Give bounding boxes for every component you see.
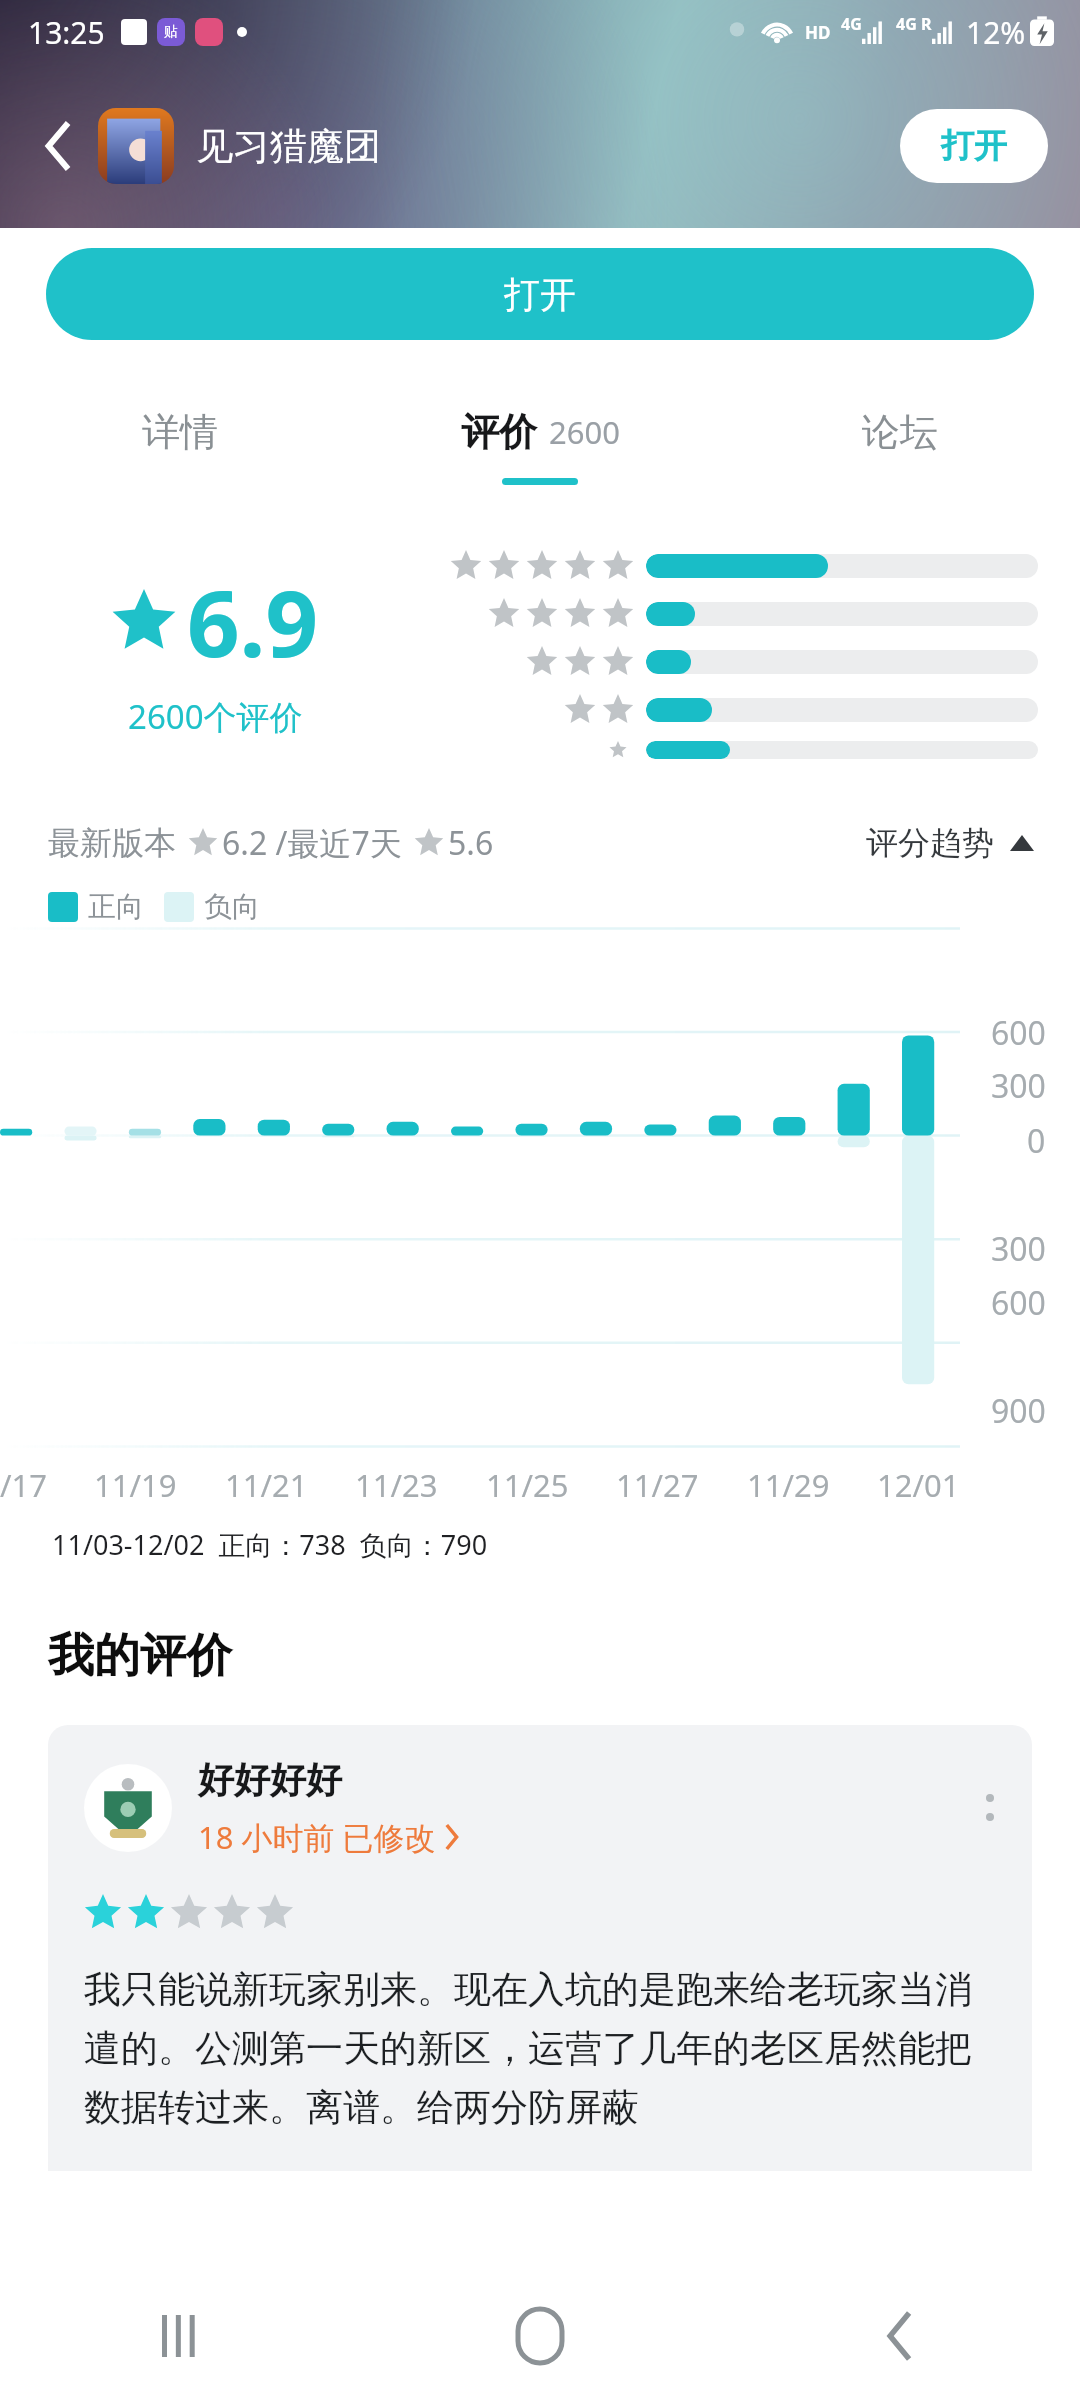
staticText: 2600个评价: [128, 694, 303, 739]
button[interactable]: 打开: [46, 248, 1034, 340]
staticText: 打开: [504, 272, 576, 317]
staticText: 最新版本: [48, 823, 176, 863]
staticText: 600: [991, 1281, 1046, 1325]
button[interactable]: 打开: [900, 109, 1048, 183]
button[interactable]: More options: [986, 1794, 994, 1821]
button[interactable]: 评价: [360, 408, 720, 485]
button[interactable]: Back: [720, 2272, 1080, 2400]
staticText: 11/23: [355, 1464, 438, 1506]
staticText: 2600: [549, 411, 620, 453]
button[interactable]: 评分趋势: [866, 823, 1034, 863]
staticText: 11/21: [225, 1464, 308, 1506]
staticText: 正向: [88, 889, 144, 924]
button[interactable]: 18 小时前 已修改: [198, 1816, 458, 1858]
staticText: 11/03-12/02 正向：738 负向：790: [52, 1526, 488, 1563]
staticText: 18 小时前 已修改: [198, 1816, 436, 1858]
button[interactable]: 详情: [0, 408, 360, 485]
staticText: 评分趋势: [866, 823, 994, 863]
staticText: 11/29: [747, 1464, 830, 1506]
staticText: HD: [805, 21, 831, 44]
staticText: 详情: [142, 408, 218, 456]
staticText: 11/19: [94, 1464, 177, 1506]
staticText: 评价: [461, 408, 537, 456]
staticText: 贴: [164, 23, 178, 41]
staticText: 11/25: [486, 1464, 569, 1506]
staticText: 6.2 /最近7天: [222, 821, 402, 865]
staticText: 负向: [204, 889, 260, 924]
staticText: 300: [991, 1227, 1046, 1271]
staticText: 300: [991, 1064, 1046, 1108]
staticText: 6.9: [187, 559, 319, 684]
staticText: 5.6: [448, 821, 494, 865]
staticText: 好好好好: [198, 1757, 342, 1802]
staticText: 我的评价: [48, 1627, 232, 1685]
button[interactable]: Home: [360, 2272, 720, 2400]
button[interactable]: Recent apps: [0, 2272, 360, 2400]
staticText: 见习猎魔团: [196, 123, 381, 170]
staticText: 我只能说新玩家别来。现在入坑的是跑来给老玩家当消遣的。公测第一天的新区，运营了几…: [84, 1966, 1002, 2131]
button[interactable]: Back: [22, 109, 96, 183]
staticText: 900: [991, 1389, 1046, 1433]
button[interactable]: 论坛: [720, 408, 1080, 485]
staticText: 4G: [841, 13, 862, 35]
staticText: /17: [0, 1464, 47, 1506]
staticText: 打开: [941, 125, 1007, 167]
staticText: 12%: [966, 12, 1026, 53]
staticText: 论坛: [862, 408, 938, 456]
staticText: 600: [991, 1011, 1046, 1055]
staticText: 4G R: [896, 13, 932, 35]
staticText: 0: [1027, 1119, 1046, 1163]
staticText: 12/01: [877, 1464, 960, 1506]
staticText: 13:25: [28, 12, 105, 53]
button[interactable]: 好好好好: [48, 1725, 1032, 2171]
staticText: 11/27: [616, 1464, 699, 1506]
